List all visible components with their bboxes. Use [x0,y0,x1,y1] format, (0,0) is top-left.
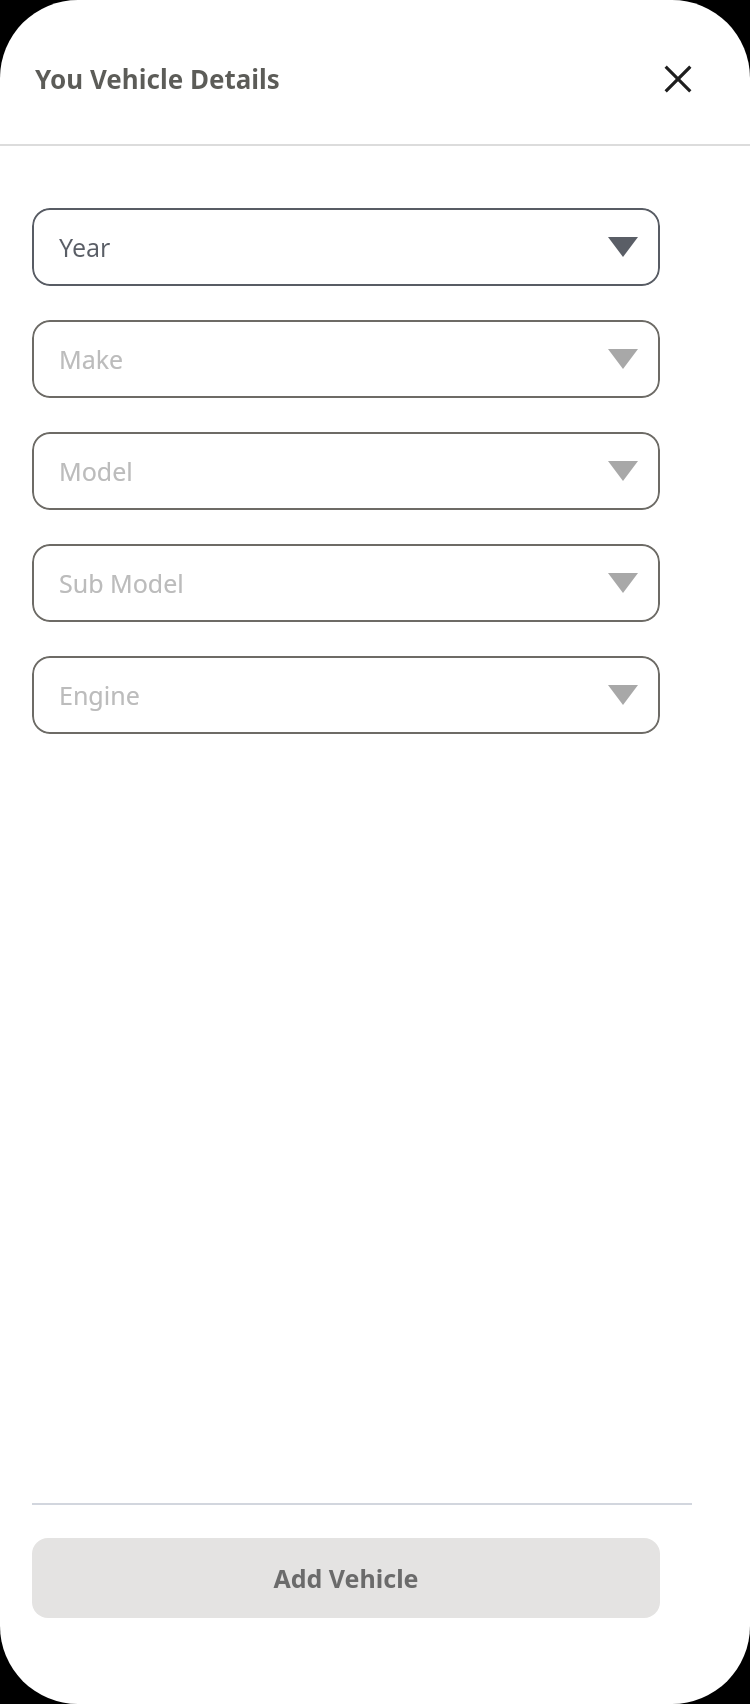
button[interactable]: Close [646,47,710,111]
staticText: Add Vehicle [273,1561,419,1595]
staticText: Engine [59,678,140,712]
staticText: Sub Model [59,566,184,600]
button[interactable]: Model [32,432,660,510]
staticText: Year [59,230,111,264]
staticText: Model [59,454,133,488]
button[interactable]: Year [32,208,660,286]
staticText: Make [59,342,124,376]
button[interactable]: Add Vehicle [32,1538,660,1618]
button[interactable]: Engine [32,656,660,734]
button[interactable]: Make [32,320,660,398]
staticText: You Vehicle Details [35,61,280,96]
button[interactable]: Sub Model [32,544,660,622]
